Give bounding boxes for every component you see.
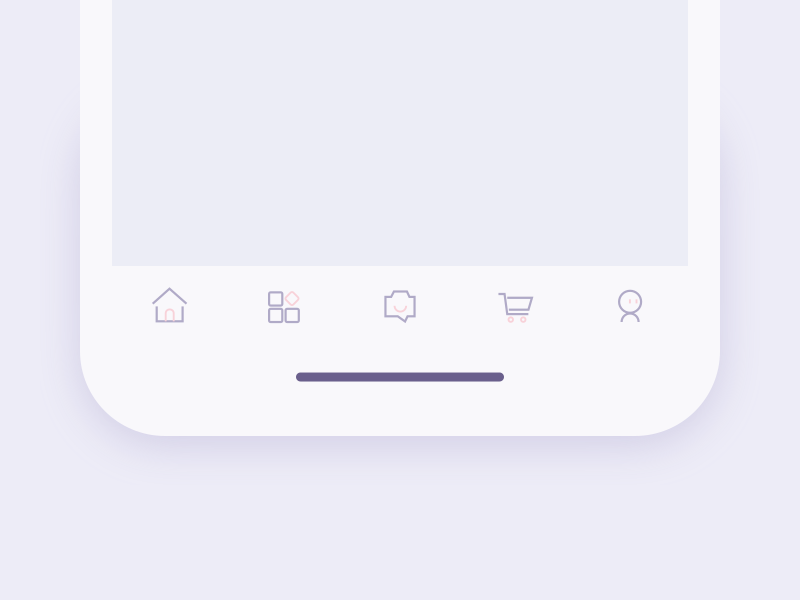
button[interactable]: Categories [227,266,342,342]
button[interactable]: Cart [458,266,573,342]
button[interactable]: Home [112,266,227,342]
button[interactable]: Profile [573,266,688,342]
button[interactable]: Messages [342,266,458,342]
